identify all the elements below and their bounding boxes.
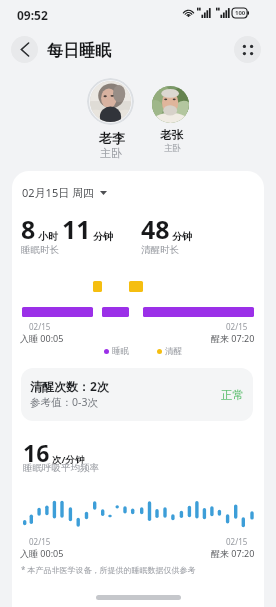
staticText: 正常: [221, 388, 244, 402]
staticText: 02/15: [226, 536, 248, 547]
button[interactable]: Back: [11, 36, 38, 63]
staticText: 次/分钟: [52, 453, 85, 466]
staticText: 醒来 07:20: [211, 332, 255, 344]
staticText: 02/15: [29, 321, 51, 332]
staticText: 睡眠时长: [21, 244, 59, 256]
staticText: 清醒时长: [141, 244, 179, 256]
staticText: 09:52: [17, 7, 48, 23]
staticText: 02月15日 周四: [22, 185, 95, 200]
button[interactable]: 清醒次数：2次: [21, 368, 253, 421]
staticText: 分钟: [172, 230, 192, 243]
staticText: 48: [141, 212, 170, 246]
staticText: 清醒次数：2次: [30, 378, 109, 394]
staticText: 入睡 00:05: [20, 332, 64, 344]
button[interactable]: 02月15日 周四: [22, 185, 107, 200]
staticText: 每日睡眠: [47, 41, 111, 61]
staticText: 11: [62, 212, 91, 246]
staticText: 02/15: [29, 536, 51, 547]
staticText: 醒来 07:20: [211, 547, 255, 559]
staticText: 主卧: [100, 146, 122, 160]
staticText: 02/15: [226, 321, 248, 332]
staticText: 100: [235, 9, 246, 17]
button[interactable]: More options: [234, 36, 261, 63]
staticText: 分钟: [93, 230, 113, 243]
staticText: 小时: [38, 230, 58, 243]
staticText: 8: [21, 212, 36, 246]
staticText: 老李: [99, 130, 125, 146]
staticText: 参考值：0-3次: [30, 395, 98, 409]
staticText: 主卧: [164, 143, 181, 154]
staticText: 16: [23, 437, 50, 468]
staticText: * 本产品非医学设备，所提供的睡眠数据仅供参考: [21, 564, 196, 575]
staticText: 入睡 00:05: [20, 547, 64, 559]
staticText: 睡眠呼吸平均频率: [23, 462, 99, 474]
staticText: 清醒: [165, 346, 182, 357]
button[interactable]: 老李 主卧: [87, 78, 134, 125]
staticText: 老张: [160, 128, 183, 142]
staticText: 睡眠: [112, 346, 129, 357]
button[interactable]: 老张 主卧: [152, 86, 189, 123]
